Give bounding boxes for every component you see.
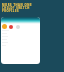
staticText: CHILD? SWITCH <box>2 6 30 10</box>
button[interactable] <box>1 17 40 64</box>
staticText: PROFILES <box>2 9 19 13</box>
staticText: MORE THAN ONE <box>2 3 32 7</box>
